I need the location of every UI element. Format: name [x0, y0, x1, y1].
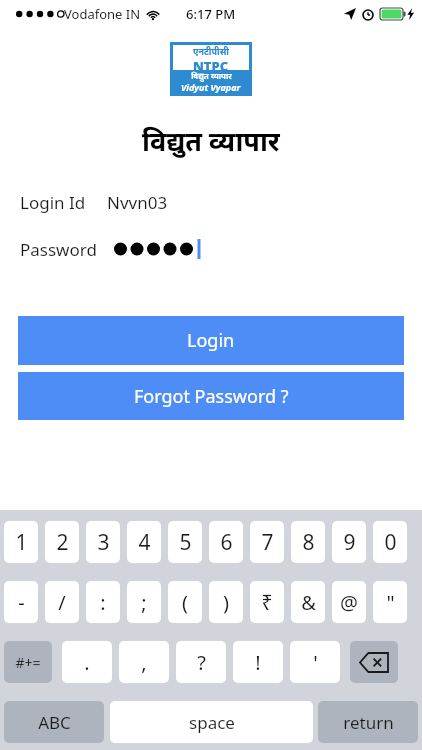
button[interactable]: " [373, 581, 407, 623]
button[interactable]: ? [176, 641, 226, 683]
staticText: 6:17 PM [186, 5, 236, 23]
staticText: 8 [302, 528, 315, 557]
staticText: Password [20, 238, 97, 261]
button[interactable]: 7 [250, 521, 284, 563]
button[interactable]: #+= [4, 641, 52, 683]
button[interactable]: ' [290, 641, 340, 683]
staticText: ! [255, 649, 261, 676]
button[interactable]: . [62, 641, 112, 683]
staticText: ABC [38, 711, 71, 734]
staticText: #+= [15, 653, 41, 672]
staticText: Login Id [20, 191, 86, 214]
staticText: 3 [97, 528, 110, 557]
staticText: ; [141, 589, 147, 616]
button[interactable]: 8 [291, 521, 325, 563]
staticText: 0 [384, 528, 397, 557]
staticText: ' [313, 649, 318, 676]
staticText: ₹ [261, 589, 273, 616]
button[interactable]: 2 [45, 521, 79, 563]
staticText: ( [182, 589, 188, 616]
staticText: विद्युत व्यापार [191, 70, 232, 81]
staticText: " [386, 589, 395, 616]
button[interactable]: ₹ [250, 581, 284, 623]
staticText: return [343, 711, 394, 734]
staticText: 4 [138, 528, 151, 557]
button[interactable]: 9 [332, 521, 366, 563]
button[interactable]: 3 [86, 521, 120, 563]
button[interactable]: ABC [4, 701, 104, 743]
button[interactable]: Login [18, 316, 404, 365]
staticText: space [189, 711, 235, 734]
button[interactable]: - [4, 581, 38, 623]
staticText: & [301, 589, 316, 616]
button[interactable]: space [110, 701, 313, 743]
staticText: Vodafone IN [64, 5, 141, 23]
staticText: 2 [56, 528, 69, 557]
button[interactable]: ) [209, 581, 243, 623]
button[interactable]: Backspace [350, 641, 398, 683]
button[interactable]: ( [168, 581, 202, 623]
button[interactable]: : [86, 581, 120, 623]
button[interactable]: return [318, 701, 418, 743]
staticText: 7 [261, 528, 274, 557]
staticText: Nvvn03 [107, 191, 168, 214]
button[interactable]: & [291, 581, 325, 623]
button[interactable]: 6 [209, 521, 243, 563]
staticText: / [58, 589, 66, 616]
staticText: Forgot Password ? [134, 384, 289, 409]
staticText: 1 [15, 528, 28, 557]
staticText: NTPC [193, 57, 229, 70]
button[interactable]: @ [332, 581, 366, 623]
button[interactable]: 4 [127, 521, 161, 563]
staticText: एनटीपीसी [193, 45, 229, 57]
staticText: 5 [179, 528, 192, 557]
button[interactable]: ; [127, 581, 161, 623]
staticText: ? [197, 649, 206, 676]
button[interactable]: / [45, 581, 79, 623]
staticText: . [84, 649, 90, 676]
staticText: ) [223, 589, 229, 616]
button[interactable]: Forgot Password ? [18, 372, 404, 420]
staticText: Vidyut Vyapar [181, 81, 241, 93]
staticText: - [18, 589, 25, 616]
staticText: Login [187, 328, 235, 353]
staticText: विद्युत व्यापार [142, 122, 280, 159]
button[interactable]: 5 [168, 521, 202, 563]
staticText: 6 [220, 528, 233, 557]
staticText: 9 [343, 528, 356, 557]
button[interactable]: 0 [373, 521, 407, 563]
button[interactable]: 1 [4, 521, 38, 563]
staticText: @ [340, 589, 358, 616]
staticText: , [141, 649, 147, 676]
staticText: : [100, 589, 106, 616]
button[interactable]: , [119, 641, 169, 683]
button[interactable]: ! [233, 641, 283, 683]
